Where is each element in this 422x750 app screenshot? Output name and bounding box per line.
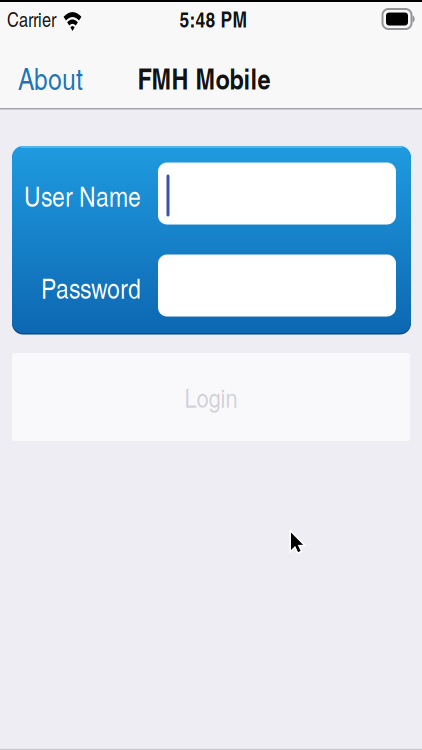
staticText: FMH Mobile — [137, 58, 270, 98]
staticText: Carrier — [7, 5, 56, 33]
staticText: Login — [184, 379, 237, 415]
staticText: User Name — [24, 176, 141, 215]
staticText: 5:48 PM — [179, 4, 247, 34]
button[interactable]: About — [18, 57, 83, 98]
button[interactable]: Password field — [158, 254, 396, 316]
button[interactable]: User Name field — [158, 162, 396, 224]
staticText: About — [18, 57, 83, 98]
button[interactable]: Login — [12, 353, 410, 441]
staticText: Password — [41, 268, 141, 307]
